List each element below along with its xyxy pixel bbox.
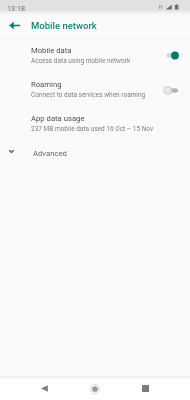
staticText: Connect to data services when roaming: [31, 91, 146, 99]
button[interactable]: Advanced: [0, 142, 190, 164]
button[interactable]: Toggle on: [163, 50, 180, 61]
button[interactable]: Toggle off: [163, 85, 180, 96]
staticText: H: [159, 4, 163, 10]
button[interactable]: Roaming: [0, 80, 190, 110]
staticText: App data usage: [31, 114, 85, 123]
button[interactable]: Back: [4, 15, 25, 36]
button[interactable]: Mobile data: [0, 46, 190, 76]
button[interactable]: App data usage: [0, 114, 190, 144]
staticText: Roaming: [31, 80, 62, 89]
staticText: 13:18: [7, 4, 26, 13]
button[interactable]: Back: [32, 378, 56, 399]
staticText: Advanced: [33, 149, 67, 158]
staticText: Access data using mobile network: [31, 57, 131, 65]
button[interactable]: Recents: [133, 378, 157, 399]
staticText: Mobile data: [31, 46, 72, 55]
staticText: 237 MB mobile data used 16 Oct – 15 Nov: [31, 125, 154, 133]
staticText: Mobile network: [31, 20, 97, 31]
button[interactable]: Home: [83, 378, 107, 399]
